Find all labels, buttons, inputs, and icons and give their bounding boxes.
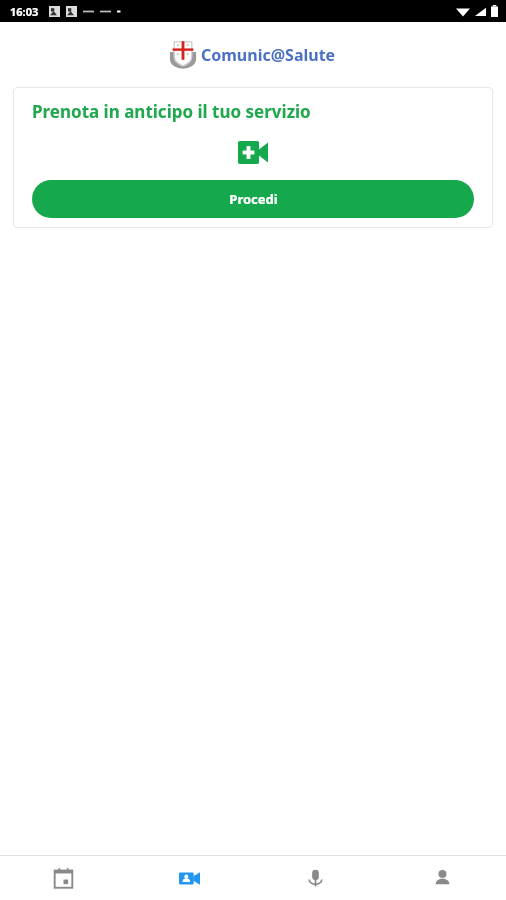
button[interactable]: Videochiamate [126, 856, 252, 900]
button[interactable]: Profilo [379, 856, 506, 900]
staticText: Procedi [229, 190, 278, 208]
button[interactable]: Audio [252, 856, 379, 900]
button[interactable]: Videochiamata [238, 141, 268, 164]
staticText: Prenota in anticipo il tuo servizio [32, 100, 311, 123]
staticText: Comunic@Salute [201, 44, 336, 66]
staticText: 16:03 [10, 4, 39, 19]
button[interactable]: Appuntamenti [0, 856, 126, 900]
button[interactable]: Procedi [32, 180, 474, 218]
